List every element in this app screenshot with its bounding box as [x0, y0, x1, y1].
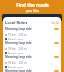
staticText: Paved . easy [8, 66, 23, 68]
staticText: Find the roads [16, 2, 49, 8]
staticText: Morning loop ride [5, 55, 32, 59]
button[interactable]: Morning loop ride [5, 40, 59, 54]
button[interactable]: Morning loop ride [5, 68, 59, 72]
button[interactable]: Morning loop ride [5, 54, 59, 68]
staticText: Local Rides [5, 20, 28, 25]
button[interactable]: See all [51, 21, 59, 25]
staticText: Paved . easy [8, 38, 23, 40]
staticText: Morning loop ride [5, 41, 32, 45]
staticText: 18 km . 320 m [8, 47, 27, 51]
staticText: 18 km . 320 m [8, 33, 27, 37]
staticText: Paved . easy [8, 52, 23, 54]
staticText: See all [51, 21, 59, 25]
staticText: Morning loop ride [5, 27, 32, 31]
staticText: Morning loop ride [5, 69, 32, 72]
button[interactable]: Morning loop ride [5, 26, 59, 40]
staticText: you like [26, 8, 39, 13]
staticText: 18 km . 320 m [8, 61, 27, 65]
